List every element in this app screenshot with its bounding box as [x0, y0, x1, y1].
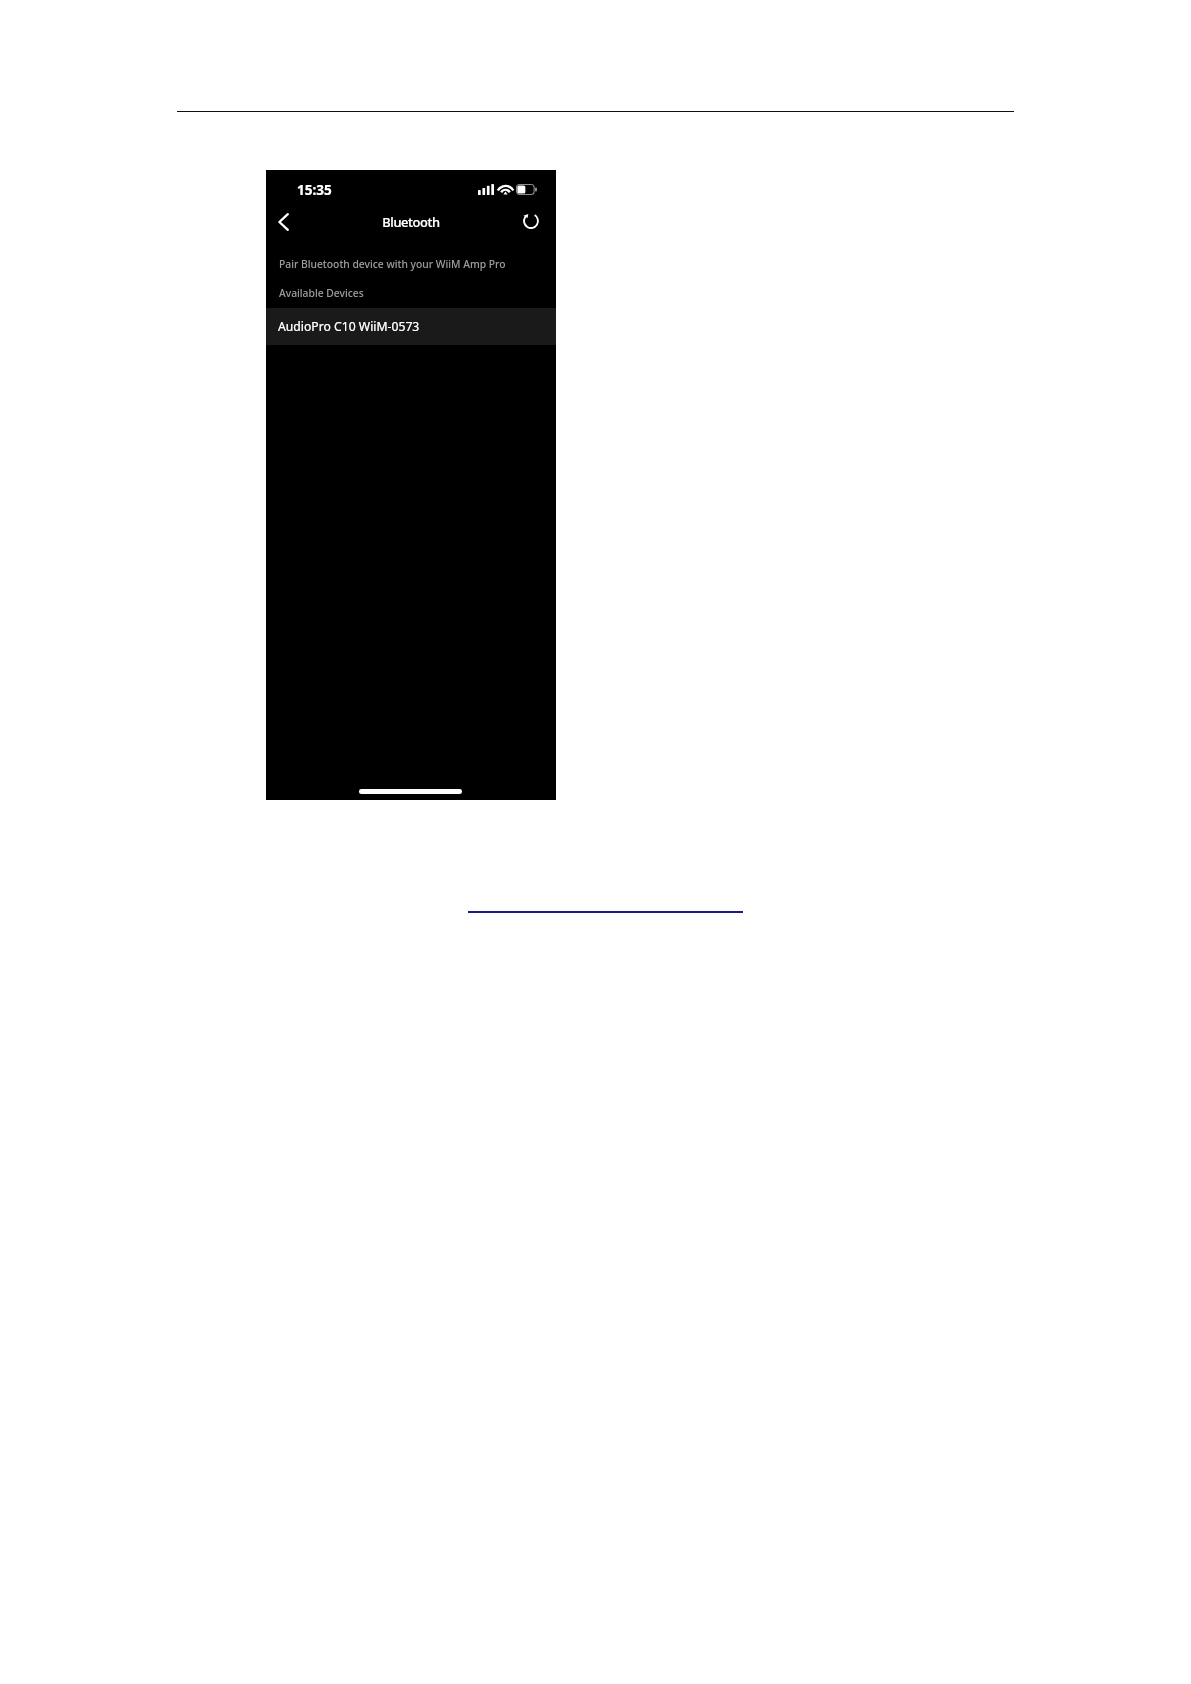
button[interactable]: Open link	[468, 903, 743, 919]
staticText: 15:35	[297, 181, 332, 199]
button[interactable]: Refresh	[516, 206, 546, 236]
button[interactable]: Back	[268, 207, 298, 237]
staticText: AudioPro C10 WiiM-0573	[278, 318, 420, 335]
staticText: Bluetooth	[382, 213, 440, 231]
button[interactable]: AudioPro C10 WiiM-0573	[266, 308, 556, 345]
staticText: Available Devices	[279, 286, 364, 300]
staticText: Pair Bluetooth device with your WiiM Amp…	[279, 257, 506, 271]
